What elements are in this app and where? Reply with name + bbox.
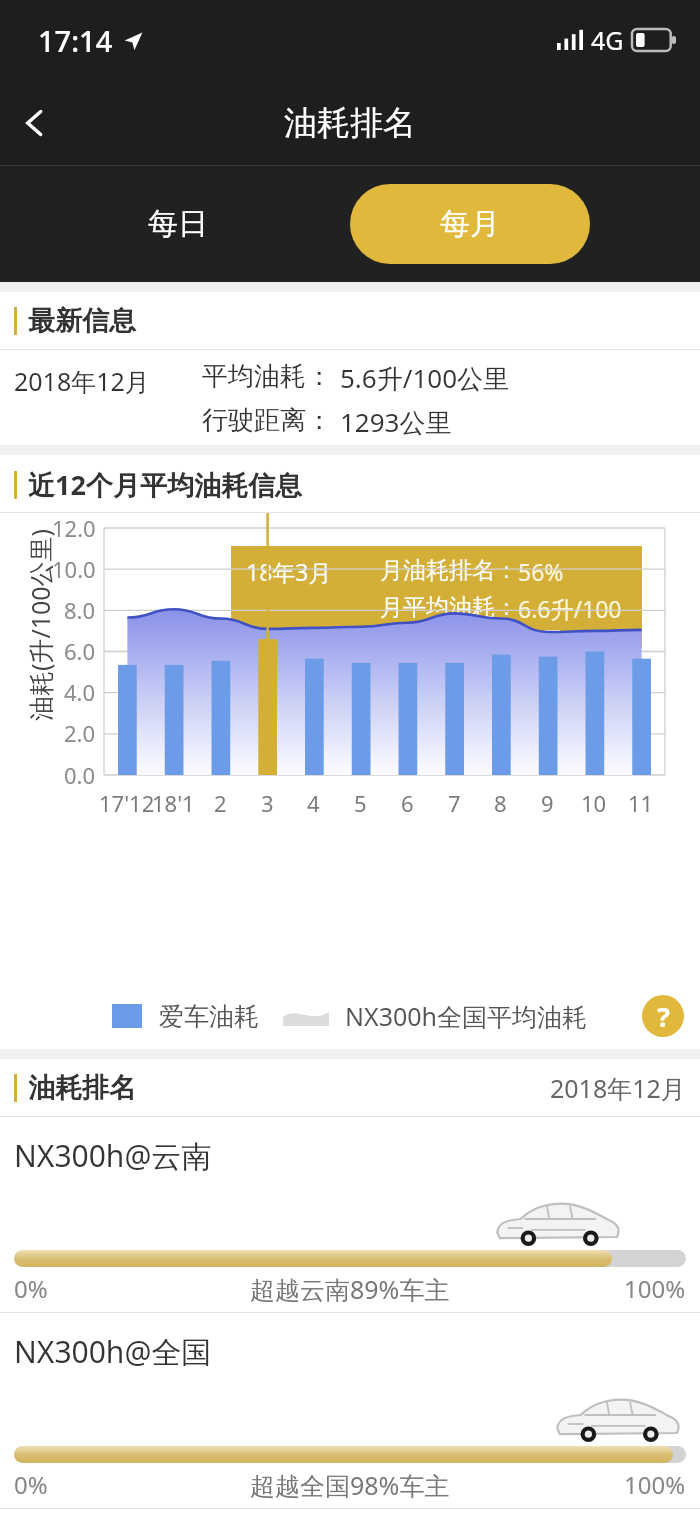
staticText: 油耗排名 — [28, 1071, 136, 1105]
staticText: 月平均油耗： — [380, 593, 518, 622]
staticText: 超越云南89%车主 — [250, 1272, 450, 1306]
staticText: 最新信息 — [28, 304, 136, 338]
staticText: 0% — [14, 1272, 48, 1305]
staticText: 10 — [581, 788, 607, 818]
staticText: 18年3月 — [246, 556, 332, 587]
button[interactable]: 每日 — [58, 184, 298, 264]
staticText: NX300h@云南 — [14, 1135, 212, 1176]
staticText: 5.6升/100公里 — [340, 360, 510, 396]
staticText: 油耗排名 — [284, 102, 416, 144]
staticText: 17:14 — [38, 21, 113, 60]
staticText: 月油耗排名： — [380, 556, 518, 585]
staticText: 爱车油耗 — [159, 1001, 259, 1032]
button[interactable]: Back — [0, 88, 70, 158]
button[interactable]: 每月 — [350, 184, 590, 264]
staticText: 每日 — [148, 205, 208, 243]
staticText: 4G — [591, 23, 624, 57]
staticText: 超越全国98%车主 — [250, 1468, 450, 1502]
staticText: 6.0 — [64, 636, 96, 666]
staticText: ? — [657, 998, 670, 1035]
staticText: 油耗(升/100公里) — [23, 525, 57, 725]
staticText: 17'12 — [99, 788, 155, 818]
staticText: 18'1 — [152, 788, 195, 818]
staticText: 56% — [518, 556, 564, 587]
staticText: 3 — [261, 788, 274, 818]
staticText: 4 — [307, 788, 320, 818]
staticText: 平均油耗： — [202, 360, 332, 393]
staticText: 8.0 — [64, 595, 96, 625]
staticText: 0% — [14, 1468, 48, 1501]
staticText: NX300h全国平均油耗 — [345, 999, 588, 1033]
staticText: 9 — [541, 788, 554, 818]
staticText: 每月 — [440, 205, 500, 243]
staticText: 行驶距离： — [202, 404, 332, 437]
staticText: NX300h@全国 — [14, 1331, 212, 1372]
staticText: 0.0 — [64, 760, 96, 790]
staticText: 7 — [448, 788, 461, 818]
staticText: 11 — [628, 788, 654, 818]
staticText: 2.0 — [64, 718, 96, 748]
staticText: 近12个月平均油耗信息 — [28, 466, 302, 503]
staticText: 2018年12月 — [550, 1071, 686, 1105]
staticText: 2 — [214, 788, 227, 818]
staticText: 12.0 — [52, 513, 96, 543]
staticText: 6 — [401, 788, 414, 818]
staticText: 100% — [624, 1272, 686, 1305]
staticText: 100% — [624, 1468, 686, 1501]
staticText: 1293公里 — [340, 404, 452, 440]
staticText: 8 — [494, 788, 507, 818]
staticText: 2018年12月 — [14, 364, 150, 398]
staticText: 4.0 — [64, 677, 96, 707]
staticText: 10.0 — [52, 554, 96, 584]
button[interactable]: Help — [642, 995, 684, 1037]
staticText: 6.6升/100公里 — [518, 593, 642, 648]
staticText: 5 — [354, 788, 367, 818]
